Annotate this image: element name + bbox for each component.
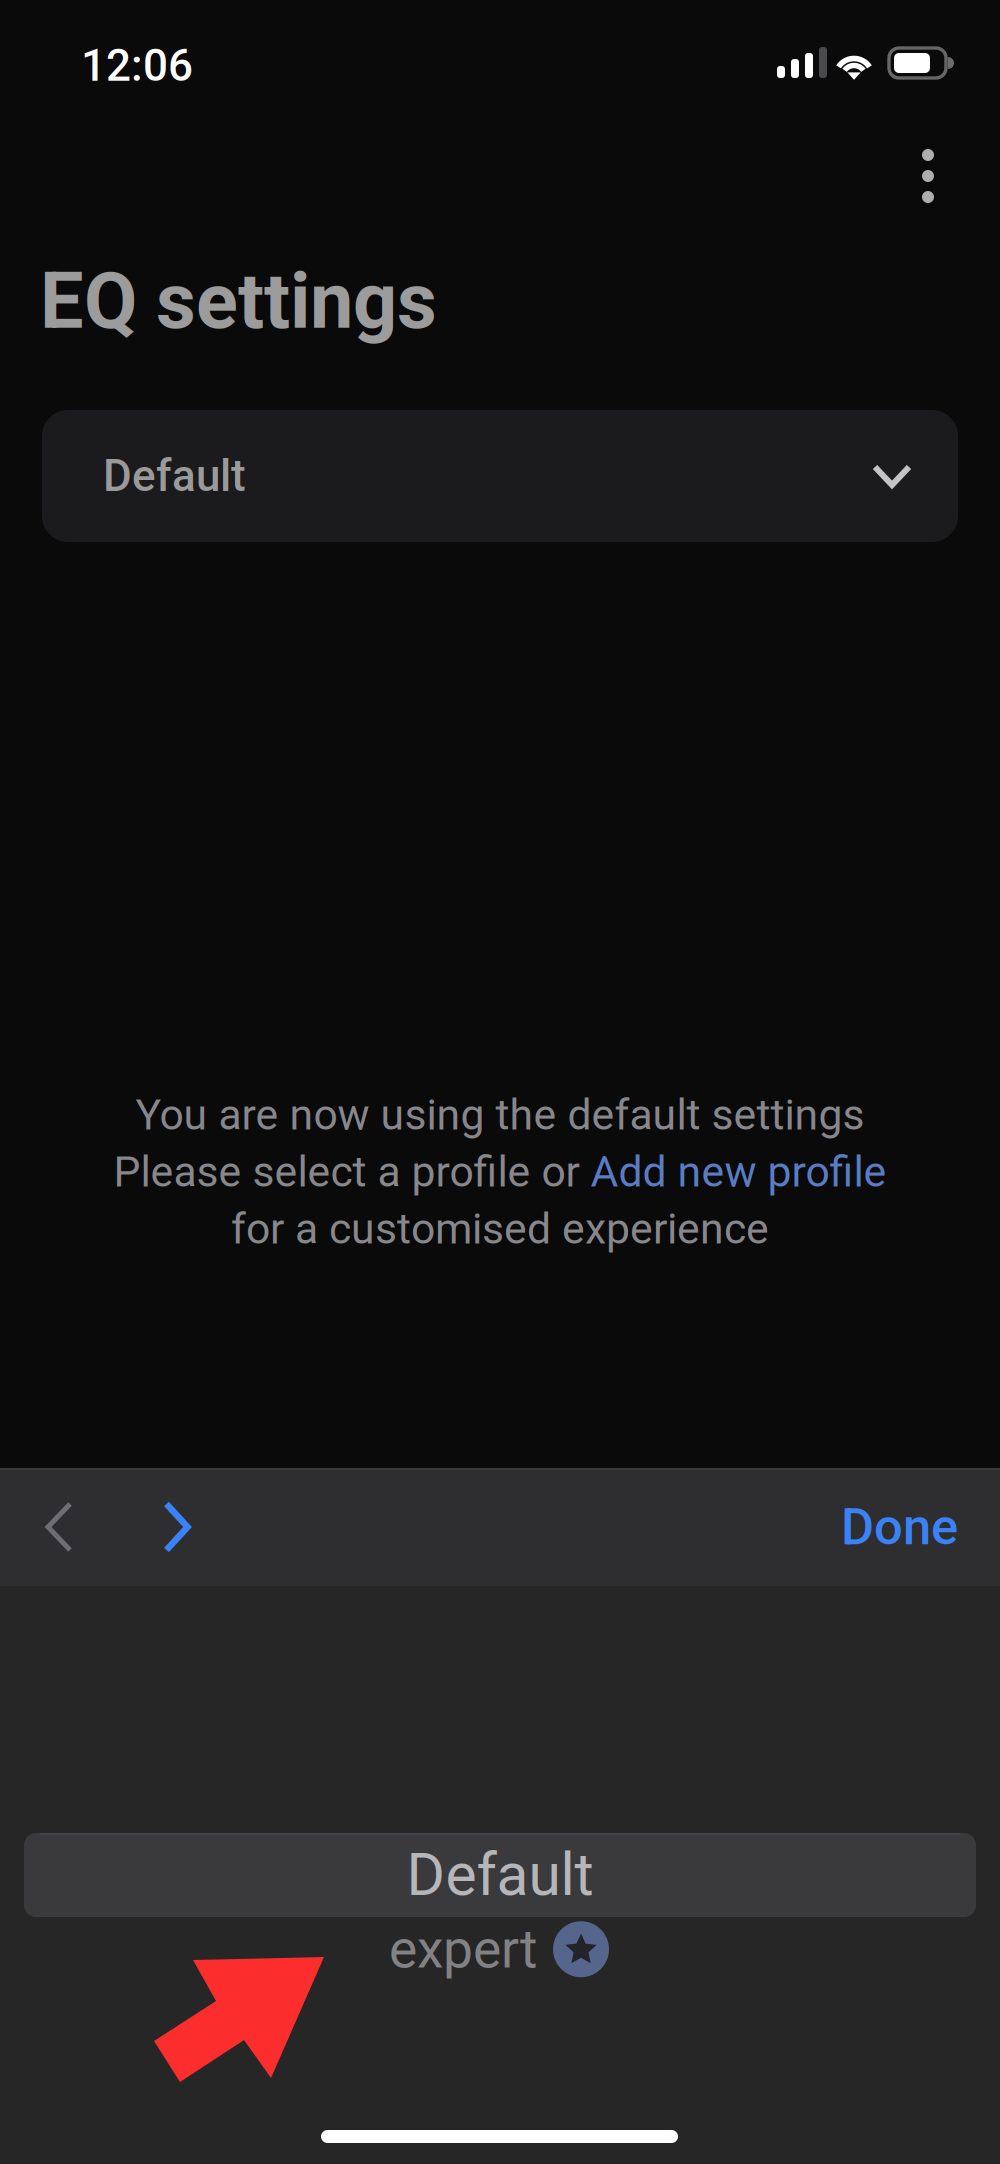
button[interactable]: Done [841, 1468, 1000, 1586]
staticText: You are now using the default settings [135, 1090, 864, 1140]
staticText: for a customised experience [231, 1204, 769, 1254]
button[interactable]: Add new profile [590, 1147, 886, 1197]
staticText: Default [103, 450, 246, 502]
button[interactable]: Default [42, 410, 958, 542]
staticText: EQ settings [40, 256, 437, 347]
staticText: Default [406, 1841, 593, 1909]
button[interactable]: Next field [118, 1468, 236, 1586]
staticText: Done [841, 1497, 958, 1557]
staticText: 12:06 [81, 40, 193, 92]
button[interactable]: Default [24, 1833, 976, 1917]
button[interactable]: expert [389, 1918, 609, 1980]
staticText: expert [389, 1918, 537, 1980]
staticText: Add new profile [590, 1147, 886, 1197]
staticText: Please select a profile or [113, 1147, 590, 1197]
button[interactable]: More options [880, 128, 976, 224]
button[interactable]: Previous field [0, 1468, 118, 1586]
